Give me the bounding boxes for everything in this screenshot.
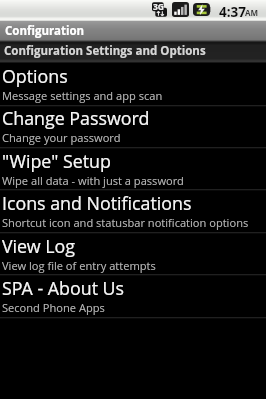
staticText: Configuration [5, 23, 85, 39]
staticText: View log file of entry attempts [2, 258, 156, 273]
button[interactable]: Change Password [0, 105, 266, 145]
staticText: Icons and Notifications [2, 191, 192, 215]
staticText: Message settings and app scan [2, 88, 163, 103]
staticText: SPA - About Us [2, 276, 125, 300]
staticText: 3G [153, 1, 165, 13]
staticText: AM [245, 7, 259, 18]
staticText: Configuration Settings and Options [4, 43, 206, 59]
staticText: Second Phone Apps [2, 300, 105, 315]
staticText: Change your password [2, 130, 121, 145]
staticText: Wipe all data - with just a password [2, 173, 184, 188]
button[interactable]: View Log [0, 233, 266, 273]
button[interactable]: "Wipe" Setup [0, 148, 266, 188]
button[interactable]: Icons and Notifications [0, 190, 266, 230]
staticText: "Wipe" Setup [2, 149, 111, 173]
staticText: 4:37 [219, 3, 246, 21]
staticText: Change Password [2, 106, 150, 130]
staticText: Options [2, 64, 68, 88]
staticText: Shortcut icon and statusbar notification… [2, 215, 249, 230]
staticText: View Log [2, 234, 75, 258]
button[interactable]: Options [0, 63, 266, 103]
button[interactable]: SPA - About Us [0, 275, 266, 315]
